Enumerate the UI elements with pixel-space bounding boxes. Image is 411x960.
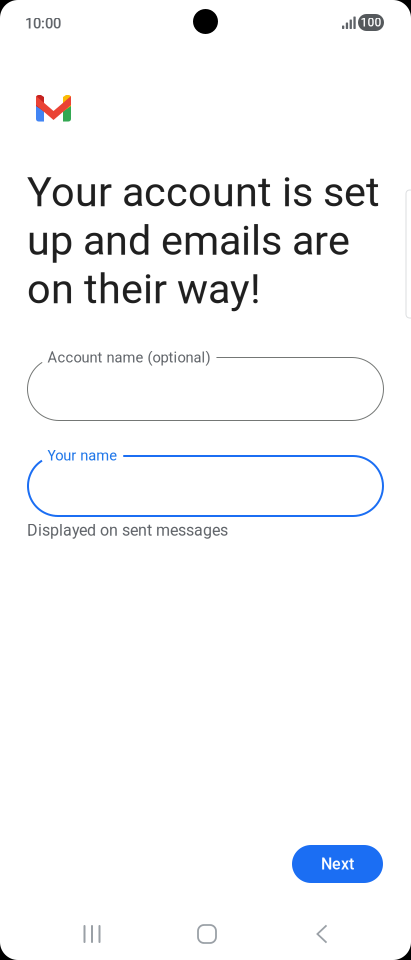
staticText: Your name xyxy=(47,447,117,464)
button[interactable]: Back xyxy=(277,911,367,957)
staticText: 10:00 xyxy=(25,15,61,32)
staticText: Displayed on sent messages xyxy=(27,521,228,540)
button[interactable]: Recent apps xyxy=(47,911,137,957)
staticText: 100 xyxy=(360,15,381,30)
staticText: Account name (optional) xyxy=(47,349,210,366)
staticText: Next xyxy=(321,855,354,873)
button[interactable]: Next xyxy=(292,845,383,883)
button[interactable]: Home xyxy=(162,911,252,957)
staticText: Your account is set up and emails are on… xyxy=(27,168,380,313)
